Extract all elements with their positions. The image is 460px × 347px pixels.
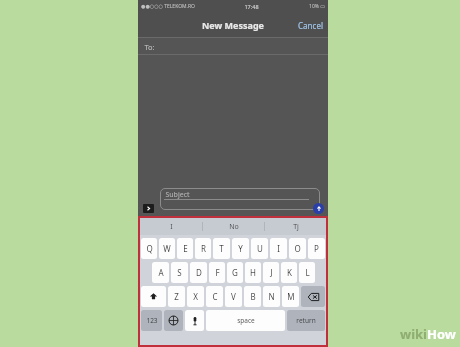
staticText: G	[232, 267, 238, 278]
button[interactable]: Shift	[141, 286, 166, 307]
staticText: F	[215, 267, 220, 278]
button[interactable]: T	[213, 238, 230, 259]
button[interactable]: H	[245, 262, 261, 283]
button[interactable]: Change keyboard	[164, 310, 183, 331]
staticText: J	[270, 267, 273, 278]
button[interactable]: D	[190, 262, 207, 283]
button[interactable]: I	[270, 238, 287, 259]
staticText: P	[314, 243, 319, 254]
staticText: S	[177, 267, 182, 278]
button[interactable]: Backspace	[301, 286, 325, 307]
staticText: R	[201, 243, 206, 254]
button[interactable]: U	[251, 238, 268, 259]
button[interactable]: E	[177, 238, 193, 259]
staticText: New Message	[202, 19, 264, 31]
button[interactable]: return	[287, 310, 325, 331]
button[interactable]: K	[281, 262, 297, 283]
button[interactable]: 123	[141, 310, 162, 331]
staticText: Q	[146, 243, 153, 254]
button[interactable]: C	[206, 286, 223, 307]
button[interactable]: I	[140, 218, 202, 235]
button[interactable]: To:	[138, 38, 328, 55]
staticText: Z	[174, 291, 179, 302]
staticText: A	[158, 267, 164, 278]
button[interactable]: B	[244, 286, 261, 307]
staticText: wiki	[400, 325, 427, 343]
staticText: K	[287, 267, 292, 278]
button[interactable]: Y	[232, 238, 249, 259]
button[interactable]: A	[152, 262, 169, 283]
staticText: space	[237, 316, 255, 325]
staticText: Tj	[293, 222, 299, 232]
button[interactable]: Expand	[143, 204, 154, 213]
staticText: ●●○○○ TELEKOM.RO	[141, 3, 195, 10]
button[interactable]: L	[299, 262, 315, 283]
button[interactable]: No	[203, 218, 264, 235]
button[interactable]: M	[282, 286, 299, 307]
button[interactable]: W	[159, 238, 175, 259]
staticText: Subject	[165, 190, 190, 200]
staticText: No	[229, 222, 239, 232]
staticText: How	[427, 325, 456, 343]
staticText: return	[296, 316, 316, 325]
button[interactable]: Q	[141, 238, 157, 259]
button[interactable]: Z	[168, 286, 185, 307]
staticText: C	[212, 291, 218, 302]
staticText: B	[250, 291, 256, 302]
staticText: E	[183, 243, 188, 254]
button[interactable]: R	[195, 238, 211, 259]
staticText: To:	[144, 42, 155, 52]
button[interactable]: space	[206, 310, 285, 331]
staticText: W	[163, 243, 171, 254]
staticText: 10% ▭	[309, 3, 325, 10]
staticText: H	[250, 267, 256, 278]
button[interactable]: J	[263, 262, 279, 283]
staticText: T	[219, 243, 224, 254]
staticText: I	[277, 243, 280, 254]
staticText: I	[170, 222, 173, 232]
button[interactable]: Send	[313, 203, 324, 214]
staticText: O	[294, 243, 301, 254]
button[interactable]: Dictate	[185, 310, 204, 331]
button[interactable]: X	[187, 286, 204, 307]
button[interactable]: Cancel	[298, 20, 323, 31]
staticText: V	[231, 291, 236, 302]
staticText: 123	[146, 316, 158, 325]
button[interactable]: S	[171, 262, 188, 283]
staticText: L	[305, 267, 310, 278]
staticText: N	[268, 291, 275, 302]
button[interactable]: G	[227, 262, 243, 283]
button[interactable]: F	[209, 262, 225, 283]
button[interactable]: Subject	[160, 188, 320, 210]
staticText: X	[193, 291, 198, 302]
staticText: 17:48	[244, 3, 259, 10]
staticText: D	[196, 267, 202, 278]
button[interactable]: N	[263, 286, 280, 307]
button[interactable]: V	[225, 286, 242, 307]
staticText: U	[257, 243, 263, 254]
staticText: Cancel	[298, 20, 323, 31]
button[interactable]: O	[289, 238, 306, 259]
button[interactable]: Tj	[265, 218, 326, 235]
staticText: Y	[238, 243, 243, 254]
staticText: M	[287, 291, 295, 302]
button[interactable]: P	[308, 238, 325, 259]
